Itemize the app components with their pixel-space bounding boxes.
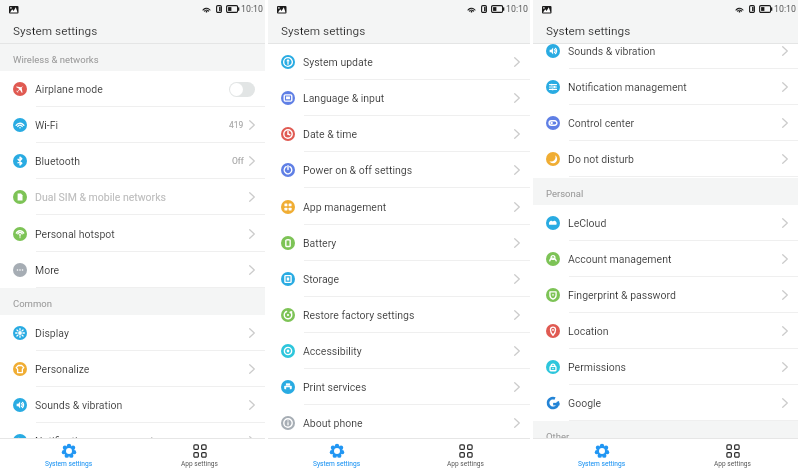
button[interactable]: Google <box>533 385 798 421</box>
staticText: Notification management <box>35 435 154 438</box>
button[interactable]: System settings <box>4 439 134 473</box>
staticText: 419 <box>229 120 244 130</box>
button[interactable]: Storage <box>268 261 530 297</box>
staticText: Restore factory settings <box>303 309 415 321</box>
staticText: Personalize <box>35 363 90 375</box>
button[interactable]: App management <box>268 189 530 225</box>
staticText: Display <box>35 327 69 339</box>
staticText: Wireless & networks <box>13 54 99 65</box>
button[interactable]: Print services <box>268 369 530 405</box>
button[interactable]: LeCloud <box>533 205 798 241</box>
button[interactable]: Airplane mode <box>0 71 265 107</box>
staticText: More <box>35 264 60 276</box>
button[interactable]: Sounds & vibration <box>533 44 798 69</box>
staticText: Power on & off settings <box>303 164 413 176</box>
staticText: System settings <box>546 24 631 38</box>
staticText: Print services <box>303 381 367 393</box>
staticText: Personal hotspot <box>35 228 115 240</box>
staticText: Storage <box>303 273 340 285</box>
staticText: Google <box>568 397 602 409</box>
staticText: App settings <box>447 460 484 468</box>
button[interactable]: Sounds & vibration <box>0 387 265 423</box>
staticText: Sounds & vibration <box>35 399 123 411</box>
staticText: Wi-Fi <box>35 119 59 131</box>
staticText: Bluetooth <box>35 155 80 167</box>
button[interactable]: About phone <box>268 405 530 438</box>
staticText: App settings <box>714 460 751 468</box>
button[interactable]: Personal hotspot <box>0 216 265 252</box>
staticText: Permissions <box>568 361 627 373</box>
staticText: Control center <box>568 117 635 129</box>
button[interactable]: App settings <box>401 439 530 473</box>
staticText: Account management <box>568 253 672 265</box>
staticText: LeCloud <box>568 217 607 229</box>
staticText: Common <box>13 298 52 309</box>
button[interactable]: Permissions <box>533 349 798 385</box>
button[interactable]: Language & input <box>268 80 530 116</box>
staticText: Airplane mode <box>35 83 103 95</box>
staticText: Location <box>568 325 609 337</box>
staticText: 10:10 <box>506 4 528 14</box>
staticText: Language & input <box>303 92 385 104</box>
button[interactable]: System settings <box>272 439 401 473</box>
staticText: System settings <box>281 24 366 38</box>
staticText: System settings <box>578 460 626 468</box>
button[interactable]: Wi-Fi <box>0 107 265 143</box>
staticText: System settings <box>13 24 98 38</box>
staticText: About phone <box>303 417 363 429</box>
staticText: App management <box>303 201 387 213</box>
button[interactable]: Restore factory settings <box>268 297 530 333</box>
button[interactable]: Dual SIM & mobile networks <box>0 179 265 215</box>
staticText: Battery <box>303 237 337 249</box>
staticText: Do not disturb <box>568 153 634 165</box>
staticText: System update <box>303 56 373 68</box>
button[interactable]: Notification management <box>0 423 265 438</box>
staticText: System settings <box>313 460 361 468</box>
button[interactable]: System settings <box>537 439 667 473</box>
staticText: 10:10 <box>241 4 263 14</box>
staticText: 10:10 <box>774 4 796 14</box>
button[interactable]: Battery <box>268 225 530 261</box>
staticText: Notification management <box>568 81 687 93</box>
button[interactable]: Accessibility <box>268 333 530 369</box>
button[interactable]: Bluetooth <box>0 143 265 179</box>
button[interactable]: Fingerprint & password <box>533 277 798 313</box>
staticText: System settings <box>45 460 93 468</box>
staticText: Off <box>232 156 244 166</box>
button[interactable]: Airplane mode toggle <box>229 82 255 97</box>
staticText: Fingerprint & password <box>568 289 676 301</box>
button[interactable]: Control center <box>533 105 798 141</box>
button[interactable]: Personalize <box>0 351 265 387</box>
button[interactable]: System update <box>268 44 530 80</box>
staticText: Personal <box>546 188 584 199</box>
staticText: Other <box>546 431 570 438</box>
staticText: Date & time <box>303 128 358 140</box>
button[interactable]: Date & time <box>268 116 530 152</box>
button[interactable]: Power on & off settings <box>268 152 530 188</box>
button[interactable]: Location <box>533 313 798 349</box>
button[interactable]: App settings <box>667 439 798 473</box>
staticText: Dual SIM & mobile networks <box>35 191 166 203</box>
staticText: Accessibility <box>303 345 362 357</box>
button[interactable]: Do not disturb <box>533 141 798 177</box>
button[interactable]: More <box>0 252 265 288</box>
button[interactable]: Account management <box>533 241 798 277</box>
staticText: App settings <box>181 460 218 468</box>
button[interactable]: Display <box>0 315 265 351</box>
staticText: Sounds & vibration <box>568 45 656 57</box>
button[interactable]: Notification management <box>533 69 798 105</box>
button[interactable]: App settings <box>134 439 265 473</box>
